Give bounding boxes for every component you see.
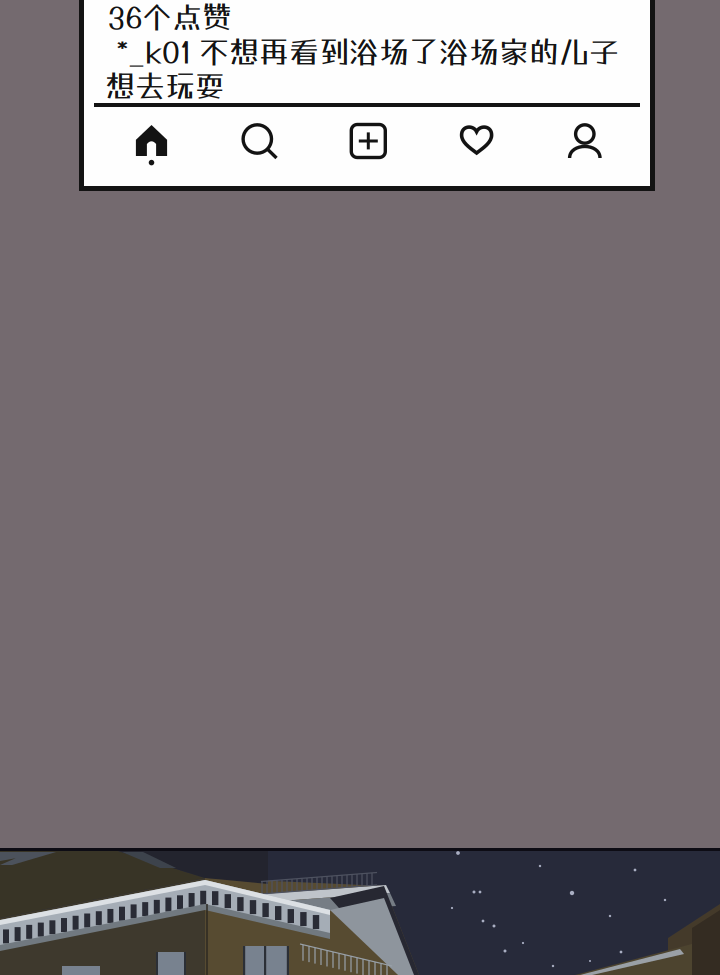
button[interactable]: Activity	[0, 0, 720, 975]
button[interactable]: Home	[0, 0, 720, 975]
button[interactable]: New post	[0, 0, 720, 975]
button[interactable]: Search	[0, 0, 720, 975]
button[interactable]: Profile	[0, 0, 720, 975]
staticText: 想去玩耍	[105, 68, 225, 103]
staticText: 36个点赞	[108, 0, 232, 34]
staticText: *_k01 不想再看到浴场了浴场家的儿子	[116, 34, 619, 69]
